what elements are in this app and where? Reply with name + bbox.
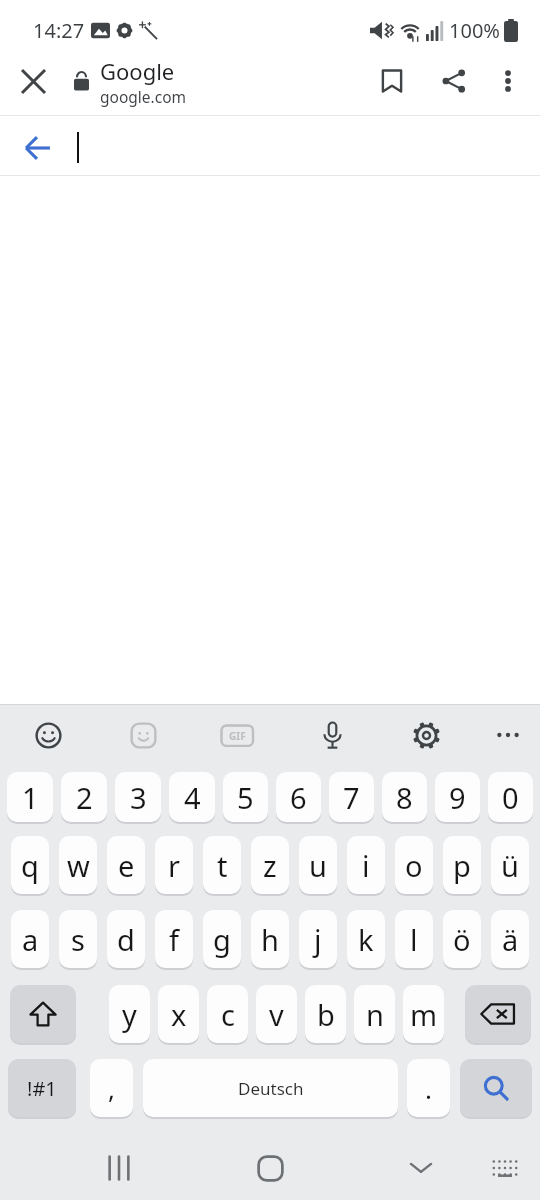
button[interactable]: k <box>347 910 385 968</box>
button[interactable] <box>95 1144 143 1192</box>
button[interactable]: 5 <box>223 772 268 822</box>
staticText: s <box>71 920 85 959</box>
button[interactable]: w <box>59 836 97 894</box>
staticText: a <box>22 920 39 959</box>
button[interactable]: 3 <box>115 772 161 822</box>
button[interactable]: b <box>305 985 346 1043</box>
button[interactable] <box>14 62 52 100</box>
staticText: 5 <box>237 778 254 817</box>
button[interactable]: p <box>443 836 481 894</box>
button[interactable]: t <box>203 836 241 894</box>
button[interactable]: s <box>59 910 97 968</box>
button[interactable] <box>18 128 58 168</box>
button[interactable]: !#1 <box>8 1059 76 1117</box>
button[interactable] <box>402 711 450 759</box>
staticText: 1 <box>22 778 39 817</box>
button[interactable] <box>119 711 167 759</box>
button[interactable] <box>465 985 531 1043</box>
button[interactable]: GIF <box>213 711 261 759</box>
staticText: w <box>67 846 90 885</box>
button[interactable]: x <box>158 985 199 1043</box>
staticText: j <box>314 920 322 959</box>
button[interactable]: , <box>90 1059 133 1117</box>
staticText: GIF <box>229 729 246 743</box>
button[interactable]: h <box>251 910 289 968</box>
button[interactable] <box>484 711 532 759</box>
staticText: ä <box>502 920 519 959</box>
button[interactable]: m <box>403 985 444 1043</box>
button[interactable]: z <box>251 836 289 894</box>
button[interactable] <box>246 1144 294 1192</box>
button[interactable]: 0 <box>488 772 533 822</box>
staticText: 14:27 <box>33 17 85 44</box>
staticText: f <box>169 920 179 959</box>
staticText: 3 <box>130 778 147 817</box>
button[interactable]: 2 <box>61 772 107 822</box>
staticText: q <box>21 846 39 885</box>
button[interactable]: 4 <box>169 772 215 822</box>
button[interactable]: 9 <box>435 772 480 822</box>
staticText: p <box>453 846 471 885</box>
staticText: y <box>122 995 137 1034</box>
button[interactable]: a <box>11 910 49 968</box>
staticText: c <box>221 995 235 1034</box>
button[interactable]: v <box>256 985 297 1043</box>
button[interactable] <box>308 711 356 759</box>
button[interactable]: e <box>107 836 145 894</box>
button[interactable]: u <box>299 836 337 894</box>
button[interactable] <box>488 61 528 101</box>
staticText: google.com <box>100 86 187 107</box>
button[interactable]: ä <box>491 910 529 968</box>
staticText: m <box>410 995 438 1034</box>
button[interactable]: 8 <box>382 772 427 822</box>
staticText: e <box>118 846 135 885</box>
button[interactable]: f <box>155 910 193 968</box>
staticText: l <box>410 920 418 959</box>
button[interactable]: ü <box>491 836 529 894</box>
button[interactable]: c <box>207 985 248 1043</box>
staticText: o <box>405 846 423 885</box>
staticText: ü <box>501 846 519 885</box>
button[interactable] <box>460 1059 532 1117</box>
staticText: h <box>261 920 279 959</box>
button[interactable] <box>370 59 414 103</box>
staticText: d <box>117 920 135 959</box>
staticText: 4 <box>184 778 201 817</box>
staticText: !#1 <box>27 1075 57 1102</box>
button[interactable] <box>481 1144 529 1192</box>
button[interactable]: d <box>107 910 145 968</box>
button[interactable] <box>10 985 76 1043</box>
button[interactable]: i <box>347 836 385 894</box>
staticText: n <box>366 995 384 1034</box>
button[interactable] <box>397 1144 445 1192</box>
staticText: 2 <box>76 778 93 817</box>
button[interactable]: n <box>354 985 395 1043</box>
staticText: , <box>108 1071 115 1106</box>
staticText: v <box>269 995 284 1034</box>
button[interactable]: 7 <box>329 772 374 822</box>
button[interactable]: y <box>109 985 150 1043</box>
staticText: 7 <box>343 778 360 817</box>
staticText: g <box>213 920 231 959</box>
button[interactable]: o <box>395 836 433 894</box>
button[interactable]: 1 <box>7 772 53 822</box>
button[interactable]: 6 <box>276 772 321 822</box>
button[interactable]: j <box>299 910 337 968</box>
button[interactable]: g <box>203 910 241 968</box>
staticText: 6 <box>290 778 307 817</box>
button[interactable] <box>432 59 476 103</box>
button[interactable]: Deutsch <box>143 1059 398 1117</box>
button[interactable]: r <box>155 836 193 894</box>
staticText: Deutsch <box>238 1077 304 1100</box>
staticText: 9 <box>449 778 466 817</box>
staticText: k <box>358 920 374 959</box>
button[interactable] <box>24 711 72 759</box>
staticText: . <box>425 1071 432 1106</box>
button[interactable]: ö <box>443 910 481 968</box>
button[interactable]: l <box>395 910 433 968</box>
staticText: u <box>309 846 327 885</box>
button[interactable]: . <box>407 1059 450 1117</box>
staticText: x <box>171 995 187 1034</box>
staticText: t <box>217 846 228 885</box>
button[interactable]: q <box>11 836 49 894</box>
